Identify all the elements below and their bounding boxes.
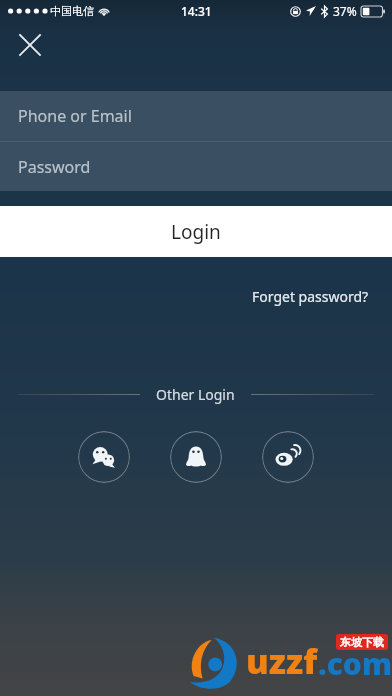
staticText: Password (18, 156, 91, 178)
staticText: 14:31 (181, 3, 212, 19)
button[interactable]: Close (10, 25, 50, 65)
button[interactable]: QQ login (170, 431, 222, 483)
staticText: Forget password? (252, 287, 369, 306)
staticText: Phone or Email (18, 105, 132, 127)
staticText: 中国电信 (50, 4, 94, 18)
staticText: uzzf (246, 638, 318, 684)
button[interactable]: Password (0, 142, 392, 191)
staticText: .com (318, 643, 392, 684)
staticText: 东坡下载 (340, 635, 384, 649)
button[interactable]: Phone or Email (0, 91, 392, 141)
button[interactable]: Login (0, 206, 392, 257)
staticText: Login (171, 219, 221, 245)
button[interactable]: WeChat login (78, 431, 130, 483)
button[interactable]: Forget password? (248, 282, 373, 311)
staticText: 37% (333, 3, 357, 19)
staticText: Other Login (156, 385, 235, 404)
button[interactable]: Weibo login (262, 431, 314, 483)
